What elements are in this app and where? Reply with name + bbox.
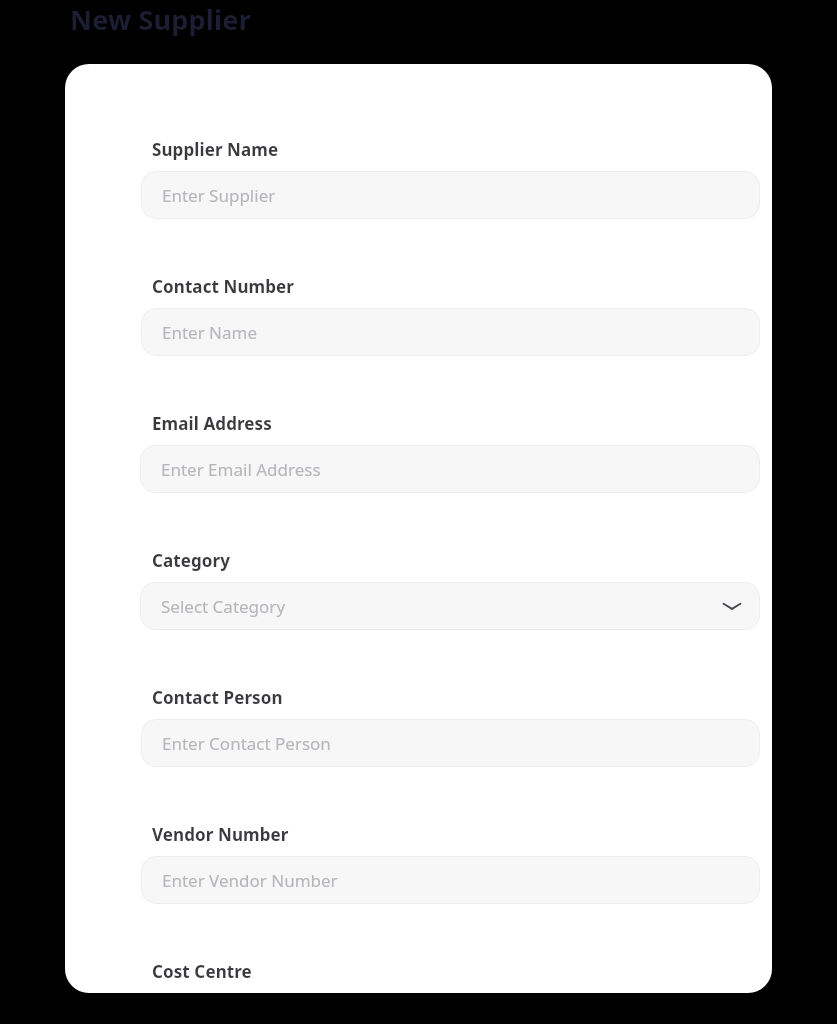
button[interactable]: Enter Name bbox=[141, 308, 760, 356]
staticText: Enter Vendor Number bbox=[162, 869, 742, 892]
staticText: Cost Centre bbox=[152, 960, 252, 983]
staticText: Email Address bbox=[152, 412, 272, 435]
button[interactable]: Enter Contact Person bbox=[141, 719, 760, 767]
staticText: New Supplier bbox=[70, 1, 251, 38]
staticText: Contact Number bbox=[152, 275, 295, 298]
staticText: Contact Person bbox=[152, 686, 283, 709]
staticText: Vendor Number bbox=[152, 823, 289, 846]
button[interactable]: Enter Supplier bbox=[141, 171, 760, 219]
button[interactable]: Enter Email Address bbox=[140, 445, 760, 493]
staticText: Select Category bbox=[161, 595, 722, 618]
staticText: Enter Email Address bbox=[161, 458, 742, 481]
button[interactable]: Enter Vendor Number bbox=[141, 856, 760, 904]
staticText: Supplier Name bbox=[152, 138, 279, 161]
button[interactable]: Select Category bbox=[140, 582, 760, 630]
staticText: Enter Name bbox=[162, 321, 742, 344]
staticText: Category bbox=[152, 549, 231, 572]
staticText: Enter Contact Person bbox=[162, 732, 742, 755]
staticText: Enter Supplier bbox=[162, 184, 742, 207]
